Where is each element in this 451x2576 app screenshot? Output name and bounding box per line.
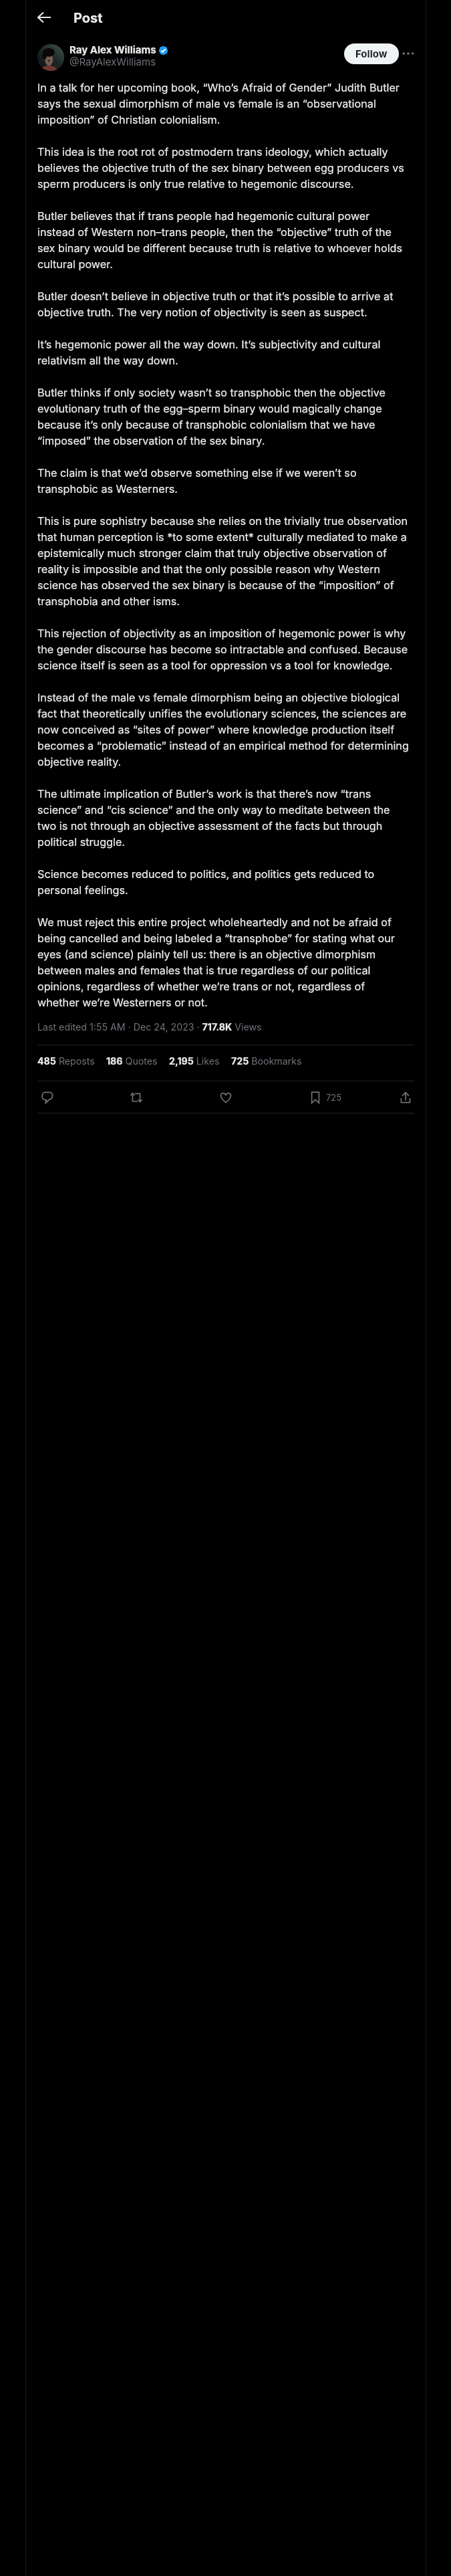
staticText: Ray Alex Williams <box>69 43 156 56</box>
button[interactable]: Repost <box>124 1085 148 1109</box>
staticText: 485 Reposts <box>37 1055 95 1067</box>
staticText: 725 <box>326 1092 342 1103</box>
button[interactable]: Back <box>31 5 57 30</box>
button[interactable]: 186 Quotes <box>106 1055 158 1067</box>
staticText: Post <box>73 9 103 26</box>
staticText: In a talk for her upcoming book, “Who’s … <box>37 79 409 1010</box>
staticText: 186 Quotes <box>106 1055 158 1067</box>
staticText: @RayAlexWilliams <box>69 56 156 68</box>
button[interactable]: 725 <box>303 1085 347 1109</box>
staticText: 2,195 Likes <box>169 1055 220 1067</box>
button[interactable]: 725 Bookmarks <box>231 1055 302 1067</box>
button[interactable]: Share <box>394 1085 417 1109</box>
staticText: 725 Bookmarks <box>231 1055 302 1067</box>
button[interactable]: Like <box>214 1085 237 1109</box>
staticText: Follow <box>355 48 388 60</box>
button[interactable]: More options <box>398 43 419 64</box>
button[interactable]: Follow <box>344 43 399 64</box>
button[interactable]: Reply <box>35 1085 59 1109</box>
button[interactable]: 2,195 Likes <box>169 1055 220 1067</box>
staticText: Last edited 1:55 AM · Dec 24, 2023 · 717… <box>37 1021 262 1033</box>
button[interactable]: Profile photo <box>37 44 64 71</box>
button[interactable]: 485 Reposts <box>37 1055 95 1067</box>
